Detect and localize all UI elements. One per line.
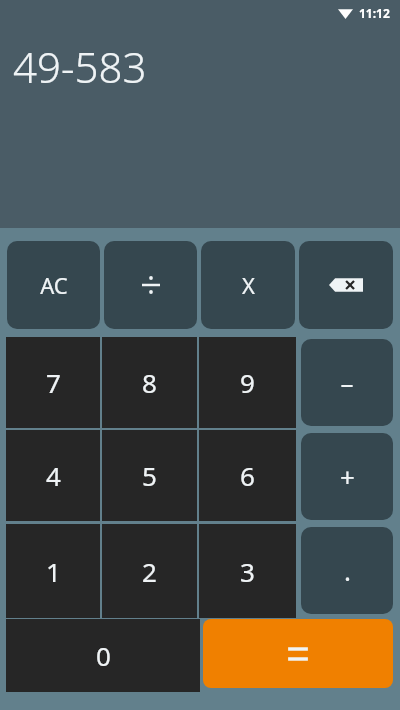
staticText: 11:12 <box>359 5 390 21</box>
staticText: 7 <box>46 365 61 400</box>
button[interactable] <box>203 619 393 688</box>
staticText: 0 <box>96 638 111 673</box>
button[interactable]: 8 <box>102 337 197 428</box>
staticText: AC <box>40 270 68 300</box>
button[interactable]: 3 <box>199 524 296 618</box>
staticText: 4 <box>46 458 61 493</box>
staticText: 6 <box>240 458 255 493</box>
button[interactable]: 7 <box>6 337 100 428</box>
staticText: + <box>340 459 355 494</box>
button[interactable]: 6 <box>199 430 296 521</box>
staticText: . <box>344 553 351 588</box>
button[interactable]: X <box>201 241 295 329</box>
button[interactable]: AC <box>7 241 100 329</box>
staticText: 8 <box>142 365 157 400</box>
button[interactable]: 1 <box>6 524 100 618</box>
staticText: X <box>242 270 255 300</box>
staticText: – <box>340 365 354 400</box>
staticText: 49-583 <box>13 38 147 95</box>
button[interactable]: 4 <box>6 430 100 521</box>
button[interactable]: – <box>301 339 393 426</box>
button[interactable]: Backspace <box>299 241 393 329</box>
button[interactable]: 9 <box>199 337 296 428</box>
staticText: 9 <box>240 365 255 400</box>
staticText: 1 <box>46 554 61 589</box>
button[interactable]: + <box>301 433 393 520</box>
button[interactable]: 2 <box>102 524 197 618</box>
button[interactable]: . <box>301 527 393 614</box>
staticText: 2 <box>142 554 157 589</box>
staticText: 5 <box>142 458 157 493</box>
button[interactable]: 5 <box>102 430 197 521</box>
staticText: 3 <box>240 554 255 589</box>
button[interactable]: 0 <box>6 619 200 692</box>
button[interactable] <box>104 241 197 329</box>
